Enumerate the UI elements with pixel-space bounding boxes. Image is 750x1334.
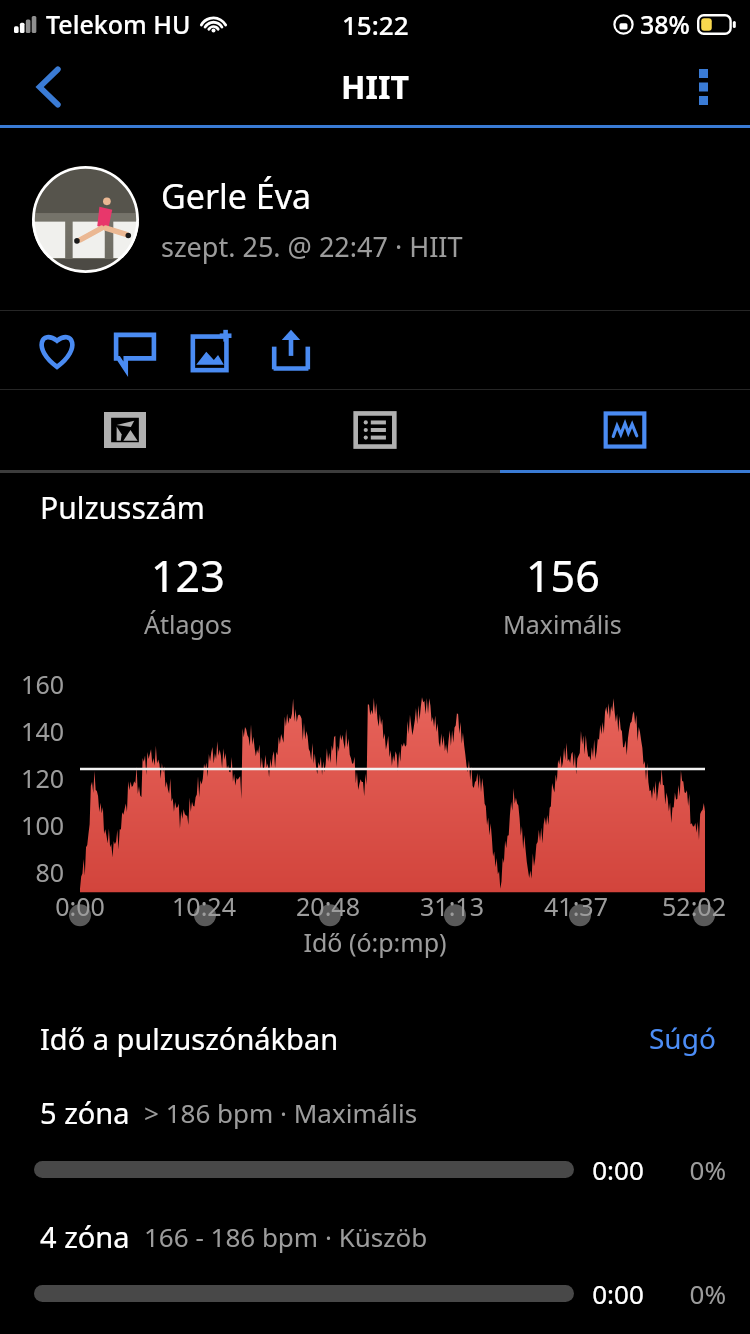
button[interactable]: Share <box>252 311 330 389</box>
staticText: Maximális <box>503 607 622 641</box>
staticText: Idő (ó:p:mp) <box>0 925 750 959</box>
button[interactable]: Map <box>0 390 250 470</box>
staticText: 15:22 <box>342 7 409 42</box>
staticText: HIIT <box>341 65 409 109</box>
button[interactable] <box>32 166 139 273</box>
staticText: Átlagos <box>144 607 232 641</box>
button[interactable]: Súgó <box>643 1013 722 1063</box>
staticText: 38% <box>640 7 690 41</box>
button[interactable]: 4 zóna <box>0 1217 750 1311</box>
button[interactable]: Like <box>18 311 96 389</box>
button[interactable]: Details <box>250 390 500 470</box>
staticText: szept. 25. @ 22:47 · HIIT <box>161 228 463 265</box>
button[interactable]: Back <box>16 54 82 120</box>
staticText: 52:02 <box>638 889 750 923</box>
staticText: 4 zóna <box>40 1217 130 1256</box>
staticText: Gerle Éva <box>161 173 312 219</box>
staticText: 123 <box>151 546 225 605</box>
staticText: 80 <box>0 855 64 889</box>
staticText: 10:24 <box>142 889 266 923</box>
staticText: Telekom HU <box>46 7 191 41</box>
staticText: 0:00 <box>574 1152 662 1187</box>
staticText: 120 <box>0 761 64 795</box>
staticText: 0:00 <box>18 889 142 923</box>
button[interactable]: Add photo <box>174 311 252 389</box>
staticText: 41:37 <box>514 889 638 923</box>
staticText: > 186 bpm · Maximális <box>144 1095 418 1130</box>
staticText: 100 <box>0 808 64 842</box>
staticText: 156 <box>526 546 600 605</box>
button[interactable]: Charts <box>500 390 750 470</box>
staticText: 5 zóna <box>40 1093 130 1132</box>
staticText: 0% <box>662 1276 726 1311</box>
staticText: 20:48 <box>266 889 390 923</box>
staticText: Súgó <box>649 1019 716 1057</box>
staticText: 140 <box>0 714 64 748</box>
staticText: 160 <box>0 667 64 701</box>
staticText: 31:13 <box>390 889 514 923</box>
button[interactable]: More options <box>670 54 736 120</box>
staticText: Idő a pulzuszónákban <box>40 1019 643 1058</box>
staticText: Pulzusszám <box>40 487 205 528</box>
staticText: 0:00 <box>574 1276 662 1311</box>
staticText: 166 - 186 bpm · Küszöb <box>144 1219 428 1254</box>
button[interactable]: Comment <box>96 311 174 389</box>
button[interactable]: 5 zóna <box>0 1093 750 1187</box>
staticText: 0% <box>662 1152 726 1187</box>
